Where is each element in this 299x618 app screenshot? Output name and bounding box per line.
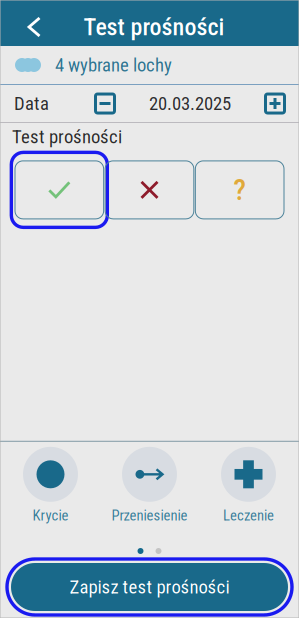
- staticText: Leczenie: [223, 507, 274, 524]
- button[interactable]: Krycie: [1, 447, 100, 524]
- staticText: Zapisz test prośności: [69, 576, 229, 598]
- staticText: ?: [233, 173, 246, 207]
- staticText: 4 wybrane lochy: [55, 54, 172, 76]
- staticText: Przeniesienie: [111, 507, 187, 524]
- button[interactable]: Prośna: [15, 161, 104, 219]
- button[interactable]: Leczenie: [199, 447, 298, 524]
- button[interactable]: Następny dzień: [259, 87, 291, 119]
- staticText: Test prośności: [12, 126, 122, 148]
- button[interactable]: Poprzedni dzień: [89, 87, 121, 119]
- button[interactable]: Niepewna: [195, 161, 284, 219]
- button[interactable]: Przeniesienie: [100, 447, 199, 524]
- button[interactable]: Zapisz test prośności: [0, 554, 299, 618]
- staticText: Krycie: [32, 507, 68, 524]
- staticText: 20.03.2025: [149, 93, 231, 114]
- button[interactable]: Nieprośna: [105, 161, 194, 219]
- button[interactable]: Wstecz: [0, 4, 64, 50]
- staticText: Test prośności: [83, 13, 224, 41]
- staticText: Data: [14, 93, 49, 114]
